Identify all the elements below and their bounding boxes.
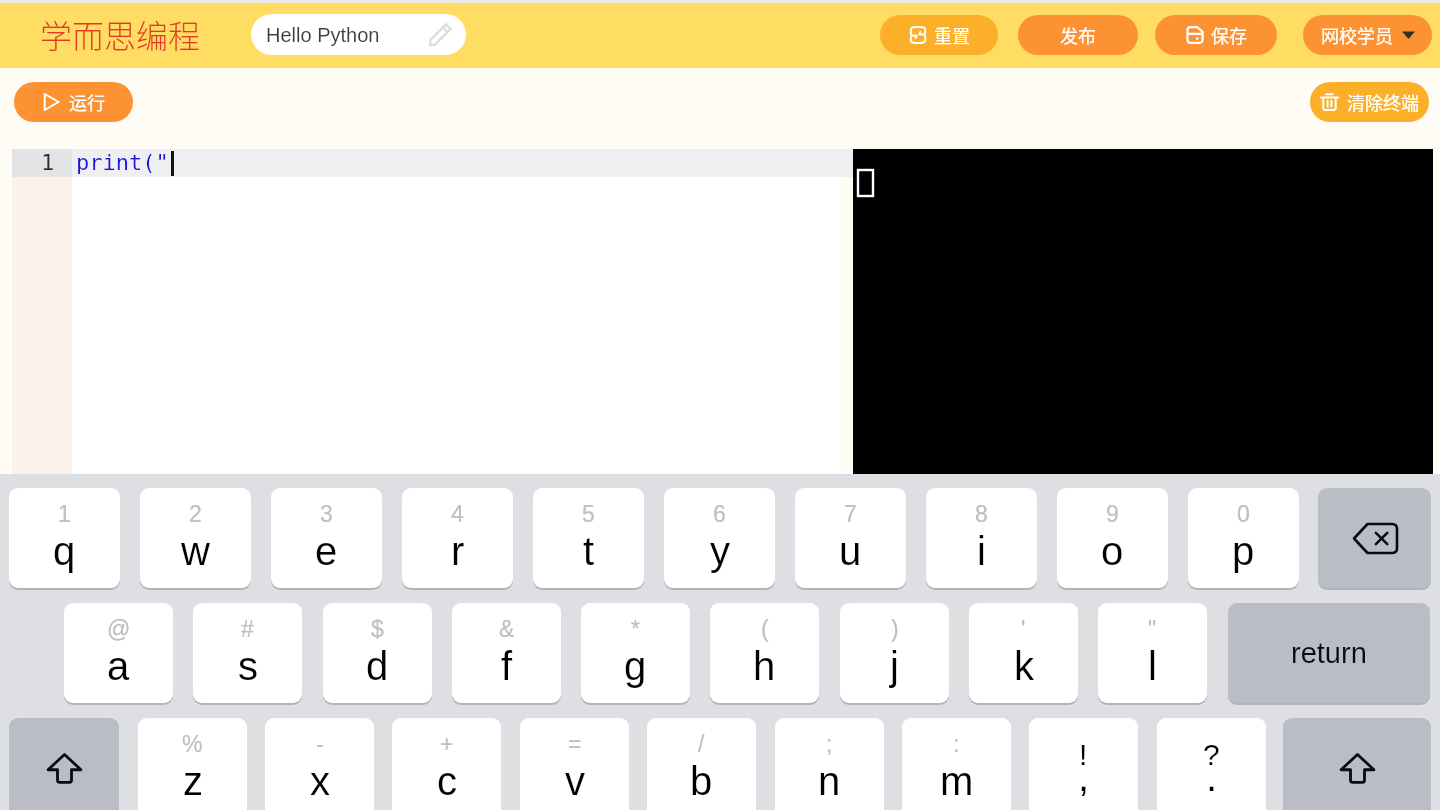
- staticText: s: [238, 644, 258, 689]
- button[interactable]: 5: [533, 488, 644, 588]
- staticText: c: [437, 759, 457, 804]
- button[interactable]: 0: [1188, 488, 1299, 588]
- staticText: print(": [76, 150, 169, 176]
- staticText: m: [940, 759, 974, 804]
- staticText: l: [1148, 644, 1157, 689]
- staticText: 7: [844, 501, 857, 527]
- button[interactable]: 重置: [880, 15, 998, 55]
- staticText: z: [183, 759, 203, 804]
- button[interactable]: 保存: [1155, 15, 1277, 55]
- button[interactable]: Shift: [9, 718, 119, 810]
- button[interactable]: %: [138, 718, 247, 810]
- staticText: 8: [975, 501, 988, 527]
- button[interactable]: Backspace: [1318, 488, 1431, 588]
- button[interactable]: @: [64, 603, 173, 703]
- staticText: 0: [1237, 501, 1250, 527]
- staticText: :: [953, 731, 960, 757]
- button[interactable]: 9: [1057, 488, 1168, 588]
- staticText: +: [440, 731, 454, 757]
- staticText: e: [315, 529, 338, 574]
- button[interactable]: 网校学员: [1303, 15, 1432, 55]
- staticText: 6: [713, 501, 726, 527]
- staticText: 3: [320, 501, 333, 527]
- button[interactable]: 清除终端: [1310, 82, 1429, 122]
- button[interactable]: (: [710, 603, 819, 703]
- staticText: f: [501, 644, 513, 689]
- staticText: .: [1206, 755, 1218, 800]
- staticText: -: [316, 731, 324, 757]
- staticText: a: [107, 644, 130, 689]
- staticText: 保存: [1211, 22, 1247, 48]
- staticText: ': [1021, 616, 1026, 642]
- button[interactable]: 3: [271, 488, 382, 588]
- staticText: i: [977, 529, 986, 574]
- button[interactable]: #: [193, 603, 302, 703]
- staticText: j: [890, 644, 899, 689]
- staticText: t: [583, 529, 595, 574]
- staticText: ): [891, 616, 899, 642]
- staticText: x: [310, 759, 330, 804]
- staticText: #: [241, 616, 254, 642]
- button[interactable]: :: [902, 718, 1011, 810]
- button[interactable]: ?: [1157, 718, 1266, 810]
- button[interactable]: =: [520, 718, 629, 810]
- staticText: g: [624, 644, 647, 689]
- staticText: return: [1291, 637, 1367, 669]
- button[interactable]: ): [840, 603, 949, 703]
- button[interactable]: -: [265, 718, 374, 810]
- staticText: 1: [41, 150, 55, 176]
- staticText: 学而思编程: [40, 11, 201, 57]
- button[interactable]: 7: [795, 488, 906, 588]
- button[interactable]: 2: [140, 488, 251, 588]
- staticText: w: [181, 529, 210, 574]
- button[interactable]: ;: [775, 718, 884, 810]
- button[interactable]: Shift: [1283, 718, 1431, 810]
- staticText: /: [698, 731, 705, 757]
- staticText: (: [761, 616, 769, 642]
- staticText: =: [568, 731, 582, 757]
- staticText: 运行: [69, 89, 105, 115]
- staticText: 清除终端: [1347, 89, 1419, 115]
- button[interactable]: 8: [926, 488, 1037, 588]
- staticText: o: [1101, 529, 1124, 574]
- staticText: 9: [1106, 501, 1119, 527]
- staticText: p: [1232, 529, 1255, 574]
- staticText: q: [53, 529, 76, 574]
- button[interactable]: return: [1228, 603, 1430, 703]
- staticText: n: [818, 759, 841, 804]
- button[interactable]: 发布: [1018, 15, 1138, 55]
- button[interactable]: 6: [664, 488, 775, 588]
- button[interactable]: 4: [402, 488, 513, 588]
- staticText: Hello Python: [266, 24, 380, 46]
- staticText: 2: [189, 501, 202, 527]
- button[interactable]: 1: [9, 488, 120, 588]
- button[interactable]: &: [452, 603, 561, 703]
- staticText: 发布: [1060, 22, 1096, 48]
- button[interactable]: $: [323, 603, 432, 703]
- button[interactable]: /: [647, 718, 756, 810]
- button[interactable]: ': [969, 603, 1078, 703]
- button[interactable]: *: [581, 603, 690, 703]
- staticText: 5: [582, 501, 595, 527]
- button[interactable]: 运行: [14, 82, 133, 122]
- staticText: 4: [451, 501, 464, 527]
- staticText: 重置: [934, 22, 970, 48]
- staticText: 网校学员: [1321, 22, 1393, 48]
- button[interactable]: +: [392, 718, 501, 810]
- staticText: ": [1148, 616, 1157, 642]
- staticText: ;: [826, 731, 833, 757]
- staticText: d: [366, 644, 389, 689]
- staticText: ,: [1078, 755, 1090, 800]
- button[interactable]: ": [1098, 603, 1207, 703]
- staticText: &: [499, 616, 515, 642]
- staticText: h: [753, 644, 776, 689]
- staticText: k: [1014, 644, 1034, 689]
- staticText: @: [107, 616, 131, 642]
- button[interactable]: Hello Python: [251, 14, 466, 55]
- staticText: !: [1079, 738, 1088, 772]
- staticText: r: [451, 529, 465, 574]
- staticText: %: [182, 731, 203, 757]
- button[interactable]: !: [1029, 718, 1138, 810]
- staticText: ?: [1203, 738, 1220, 772]
- staticText: *: [631, 616, 640, 642]
